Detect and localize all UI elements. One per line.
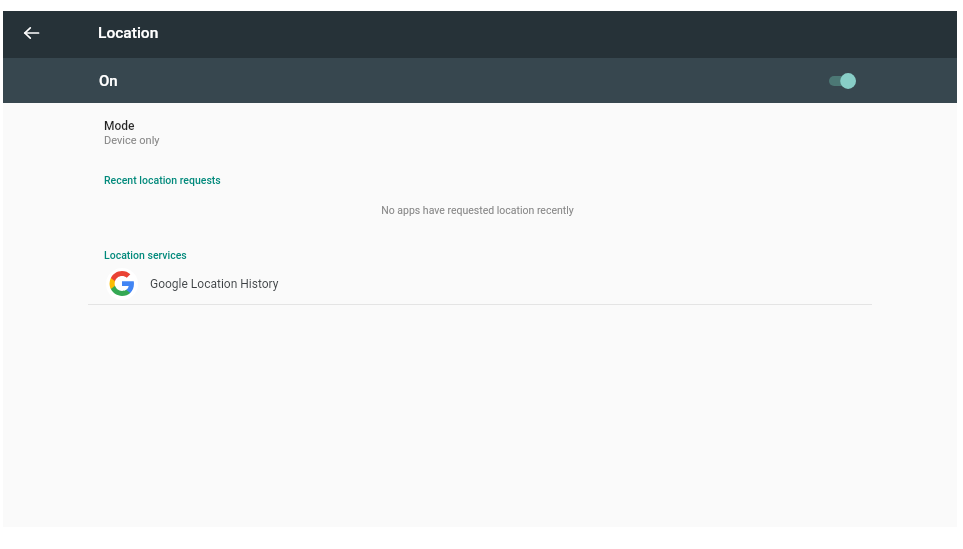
staticText: Google Location History (150, 277, 279, 291)
staticText: Location services (104, 249, 187, 261)
button[interactable]: Navigate up (10, 9, 52, 56)
button[interactable]: On (3, 58, 957, 103)
staticText: Mode (104, 119, 135, 133)
staticText: On (99, 72, 118, 90)
staticText: Device only (104, 134, 160, 147)
button[interactable]: Mode (3, 111, 957, 153)
staticText: No apps have requested location recently (91, 204, 864, 216)
staticText: Recent location requests (104, 174, 221, 186)
button[interactable]: Use location, on (829, 69, 859, 93)
button[interactable]: Google Location History (3, 265, 957, 303)
staticText: Location (98, 24, 159, 42)
